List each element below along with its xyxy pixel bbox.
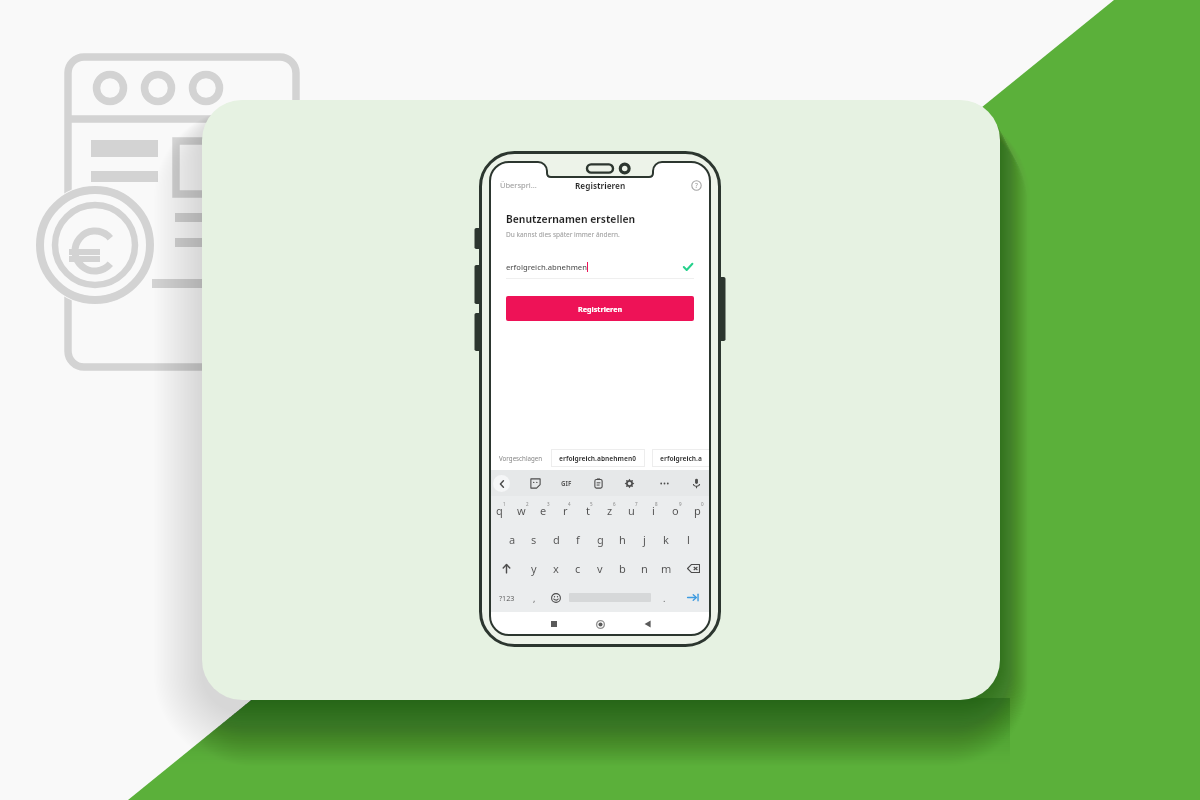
staticText: ? <box>695 181 698 190</box>
button[interactable]: p <box>688 496 710 525</box>
staticText: Vorgeschlagen <box>499 454 543 462</box>
button[interactable]: h <box>611 525 633 554</box>
staticText: 3 <box>547 501 550 507</box>
button[interactable]: c <box>567 554 589 583</box>
staticText: b <box>619 561 626 576</box>
staticText: 5 <box>590 501 593 507</box>
button[interactable]: Löschen <box>677 554 710 583</box>
staticText: Registrieren <box>578 304 623 314</box>
button[interactable]: Zurück <box>493 475 510 492</box>
button[interactable]: Sticker <box>528 476 542 490</box>
button[interactable]: Spracheingabe <box>689 476 703 490</box>
staticText: 2 <box>526 501 529 507</box>
staticText: Registrieren <box>575 180 626 191</box>
button[interactable]: GIF <box>559 477 574 489</box>
staticText: e <box>540 503 547 518</box>
button[interactable]: ?123 <box>490 583 524 612</box>
staticText: 9 <box>679 501 682 507</box>
button[interactable]: a <box>501 525 523 554</box>
staticText: p <box>694 503 701 518</box>
button[interactable]: Emoji <box>545 583 566 612</box>
button[interactable]: Übersicht <box>530 613 577 635</box>
staticText: i <box>652 503 655 518</box>
button[interactable]: Mehr <box>657 476 671 490</box>
button[interactable]: v <box>589 554 611 583</box>
staticText: GIF <box>561 479 572 487</box>
button[interactable]: d <box>545 525 567 554</box>
staticText: g <box>597 532 604 547</box>
staticText: erfolgreich.abnehmen0 <box>559 454 637 463</box>
button[interactable]: s <box>523 525 545 554</box>
staticText: v <box>597 561 603 576</box>
button[interactable]: Zwischenablage <box>591 476 605 490</box>
staticText: s <box>531 532 537 547</box>
staticText: . <box>663 592 666 604</box>
staticText: ?123 <box>499 593 515 603</box>
button[interactable]: . <box>654 583 675 612</box>
staticText: f <box>576 532 580 547</box>
button[interactable]: i <box>644 496 666 525</box>
button[interactable]: erfolgreich.abnehmen0 <box>551 449 645 467</box>
button[interactable]: b <box>611 554 633 583</box>
staticText: d <box>553 532 560 547</box>
staticText: 1 <box>503 501 506 507</box>
staticText: k <box>663 532 669 547</box>
button[interactable]: Zurück <box>624 613 671 635</box>
button[interactable]: z <box>600 496 622 525</box>
staticText: t <box>586 503 590 518</box>
button[interactable]: u <box>622 496 644 525</box>
staticText: Benutzernamen erstellen <box>506 212 636 226</box>
button[interactable]: m <box>655 554 677 583</box>
button[interactable]: Umschalt <box>490 554 523 583</box>
button[interactable]: j <box>633 525 655 554</box>
button[interactable]: q <box>490 496 512 525</box>
button[interactable]: Überspri... <box>490 180 537 190</box>
button[interactable]: erfolgreich.abneh <box>652 449 710 467</box>
staticText: l <box>687 532 690 547</box>
staticText: a <box>509 532 516 547</box>
button[interactable]: o <box>666 496 688 525</box>
button[interactable]: w <box>512 496 534 525</box>
staticText: z <box>607 503 613 518</box>
button[interactable]: f <box>567 525 589 554</box>
staticText: q <box>496 503 503 518</box>
button[interactable]: , <box>524 583 545 612</box>
staticText: 8 <box>655 501 658 507</box>
button[interactable]: n <box>633 554 655 583</box>
staticText: o <box>672 503 679 518</box>
staticText: , <box>533 592 536 604</box>
staticText: erfolgreich.abneh <box>660 454 702 463</box>
button[interactable]: Registrieren <box>506 296 694 321</box>
staticText: erfolgreich.abnehmen <box>506 262 587 272</box>
staticText: u <box>628 503 635 518</box>
button[interactable]: Weiter <box>675 583 710 612</box>
button[interactable]: k <box>655 525 677 554</box>
staticText: y <box>531 561 537 576</box>
staticText: h <box>619 532 626 547</box>
button[interactable]: Einstellungen <box>622 476 636 490</box>
staticText: r <box>563 503 568 518</box>
button[interactable]: x <box>545 554 567 583</box>
staticText: 4 <box>568 501 571 507</box>
staticText: 0 <box>701 501 704 507</box>
staticText: 7 <box>635 501 638 507</box>
staticText: Du kannst dies später immer ändern. <box>506 230 620 239</box>
button[interactable]: r <box>556 496 578 525</box>
staticText: m <box>661 561 672 576</box>
staticText: w <box>517 503 526 518</box>
staticText: x <box>553 561 559 576</box>
button[interactable]: t <box>578 496 600 525</box>
staticText: c <box>575 561 581 576</box>
staticText: 6 <box>613 501 616 507</box>
button[interactable]: l <box>677 525 699 554</box>
staticText: n <box>641 561 648 576</box>
button[interactable]: g <box>589 525 611 554</box>
staticText: j <box>643 532 646 547</box>
button[interactable]: e <box>534 496 556 525</box>
button[interactable]: y <box>523 554 545 583</box>
button[interactable]: Hilfe <box>691 180 702 191</box>
button[interactable]: Startbildschirm <box>577 613 624 635</box>
